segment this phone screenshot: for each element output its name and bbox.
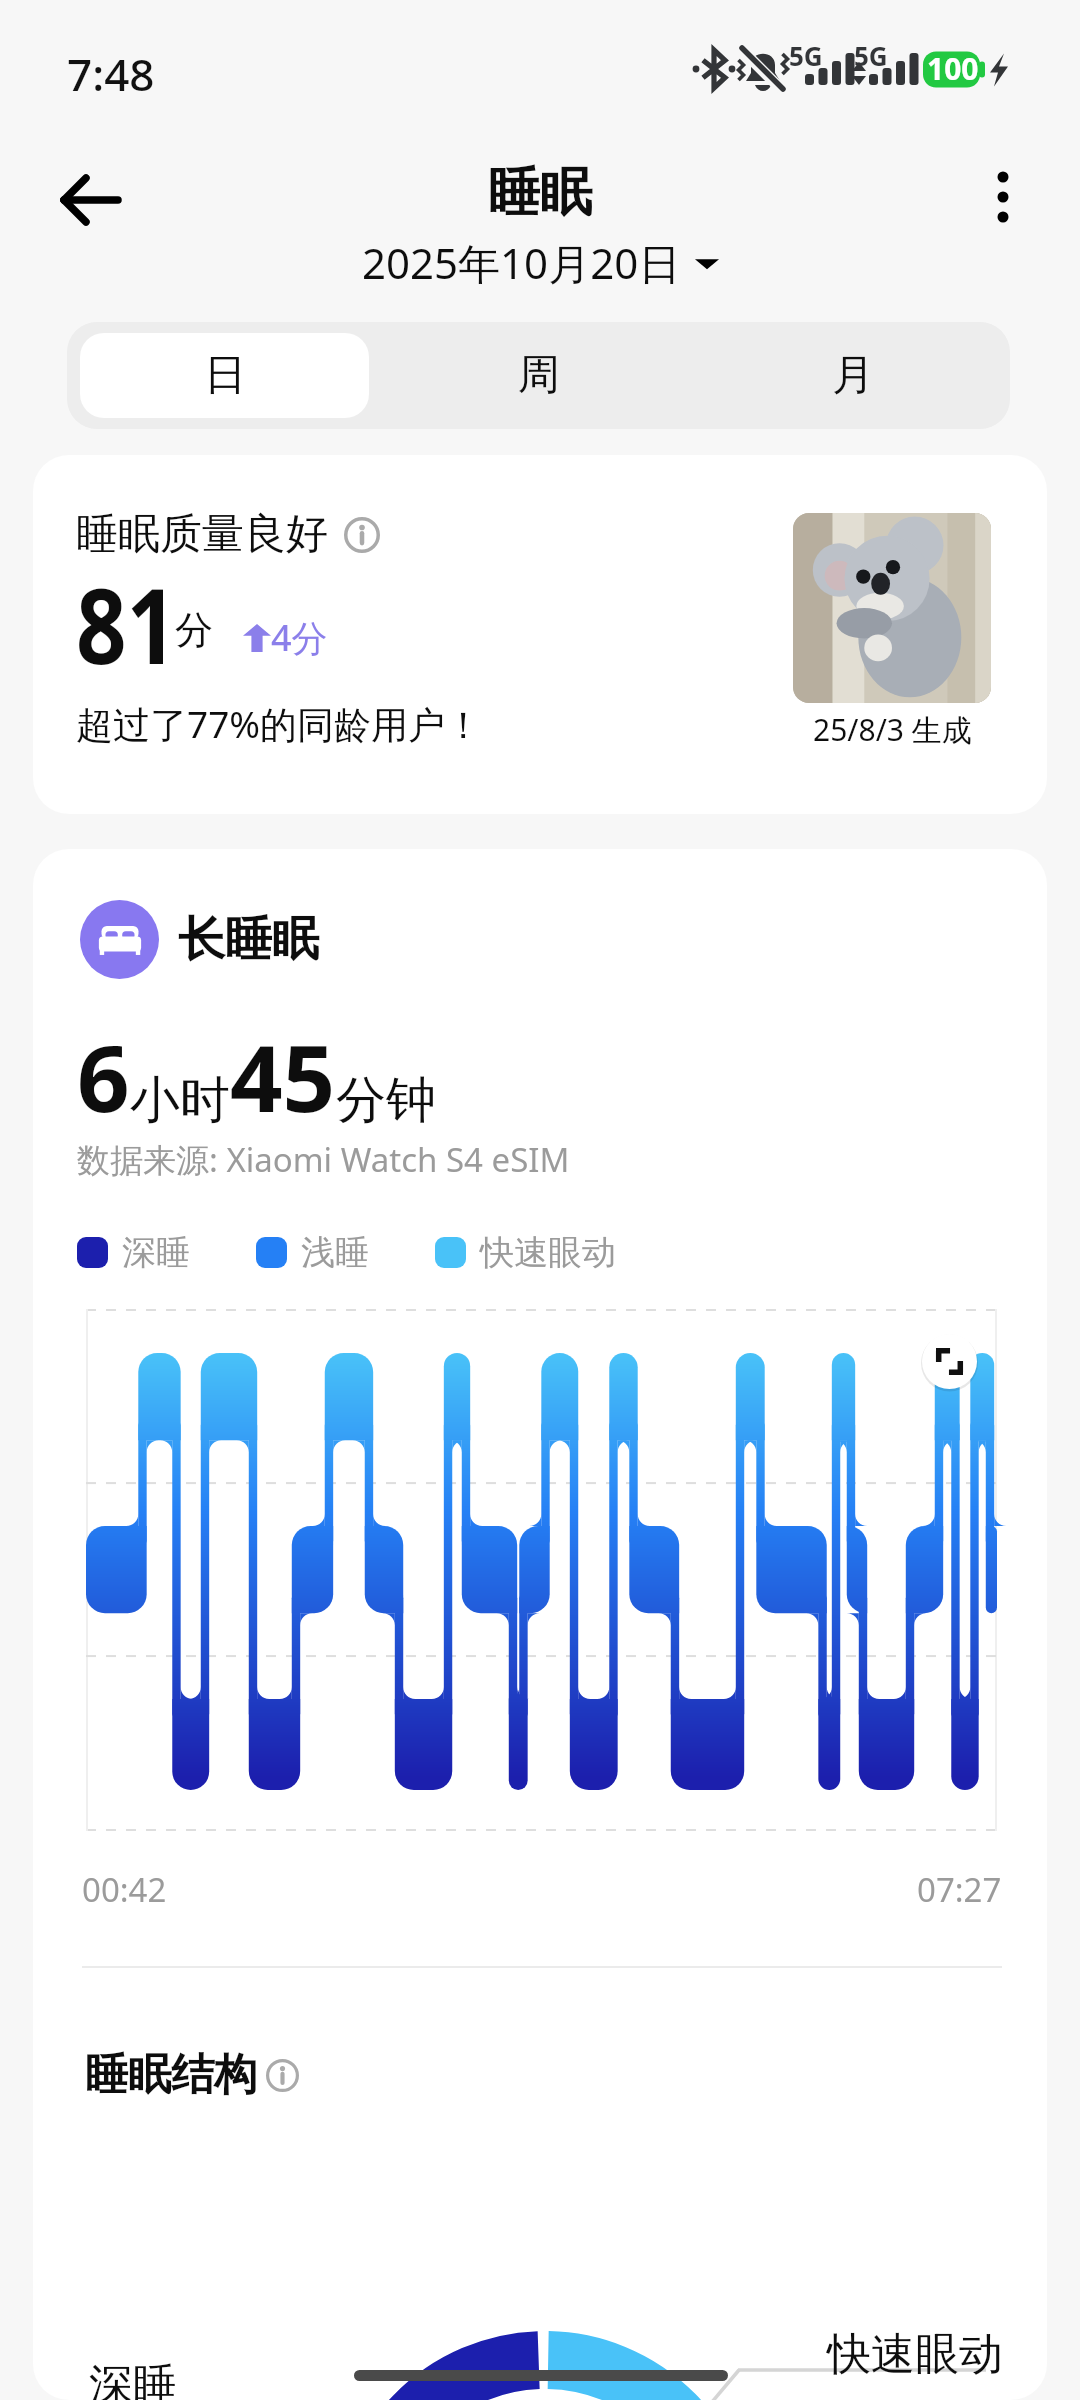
- button[interactable]: 2025年10月20日: [362, 234, 719, 291]
- staticText: 5G: [854, 38, 888, 73]
- staticText: 2025年10月20日: [362, 234, 681, 291]
- button[interactable]: More options: [958, 152, 1048, 242]
- staticText: 6: [77, 1014, 130, 1139]
- staticText: 数据来源: Xiaomi Watch S4 eSIM: [77, 1137, 570, 1182]
- staticText: 睡眠质量良好: [76, 508, 328, 561]
- button[interactable]: 日: [80, 333, 369, 418]
- button[interactable]: 快速眼动: [435, 1231, 616, 1274]
- staticText: 07:27: [917, 1867, 1002, 1912]
- staticText: 00:42: [82, 1867, 167, 1912]
- button[interactable]: Back: [42, 152, 138, 248]
- staticText: 浅睡: [301, 1231, 369, 1274]
- staticText: 4分: [271, 613, 328, 662]
- staticText: 月: [832, 349, 874, 402]
- staticText: 睡眠结构: [85, 2048, 257, 2102]
- button[interactable]: 长睡眠: [80, 900, 319, 979]
- staticText: 周: [518, 349, 560, 402]
- staticText: 快速眼动: [827, 2327, 1003, 2382]
- staticText: 深睡: [89, 2358, 177, 2400]
- staticText: 25/8/3 生成: [813, 709, 972, 750]
- staticText: 分钟: [336, 1069, 436, 1132]
- staticText: 100: [927, 48, 979, 89]
- staticText: 长睡眠: [178, 910, 319, 969]
- staticText: 5G: [789, 38, 823, 73]
- staticText: 日: [204, 349, 246, 402]
- staticText: 81: [76, 553, 177, 665]
- staticText: 深睡: [122, 1231, 190, 1274]
- button[interactable]: 浅睡: [256, 1231, 369, 1274]
- staticText: 7:48: [67, 44, 155, 104]
- button[interactable]: 睡眠质量良好: [33, 455, 1047, 814]
- button[interactable]: 深睡: [77, 1231, 190, 1274]
- button[interactable]: 25/8/3 生成: [783, 501, 1000, 760]
- button[interactable]: Expand chart: [921, 1333, 978, 1390]
- staticText: 快速眼动: [480, 1231, 616, 1274]
- staticText: 分: [175, 606, 213, 654]
- button[interactable]: 月: [709, 333, 997, 418]
- staticText: 睡眠: [488, 160, 592, 226]
- staticText: 小时: [130, 1069, 230, 1132]
- button[interactable]: 周: [395, 333, 683, 418]
- staticText: 45: [230, 1014, 336, 1139]
- staticText: 超过了77%的同龄用户！: [76, 698, 483, 749]
